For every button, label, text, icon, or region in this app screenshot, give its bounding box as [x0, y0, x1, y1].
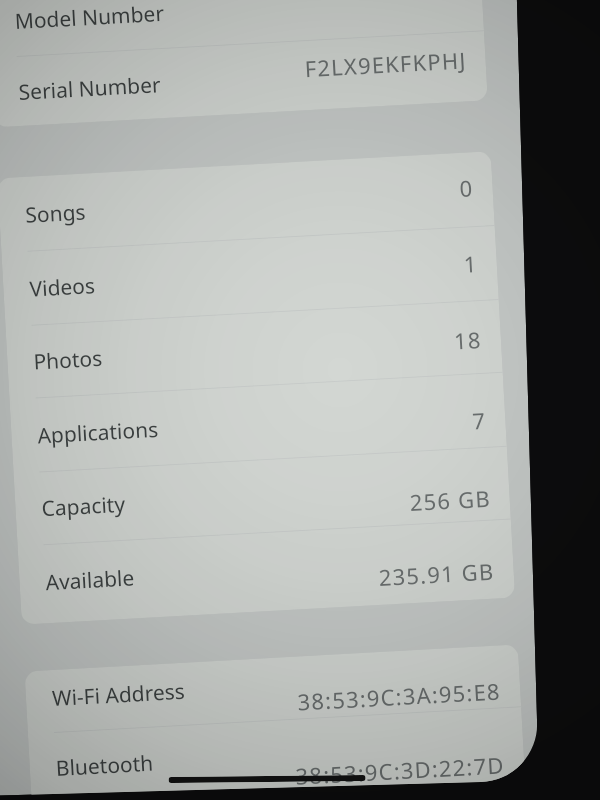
staticText: Applications [37, 415, 159, 450]
staticText: Photos [33, 344, 103, 377]
button[interactable]: Videos [1, 226, 499, 327]
staticText: 0 [459, 172, 474, 203]
button[interactable]: Serial Number [0, 31, 488, 129]
staticText: 235.91 GB [378, 556, 495, 592]
button[interactable]: Bluetooth [28, 707, 525, 795]
staticText: 38:53:9C:3A:95:E8 [297, 675, 502, 717]
staticText: Songs [25, 197, 87, 230]
button[interactable]: Songs [0, 152, 495, 253]
staticText: Videos [29, 271, 96, 304]
button[interactable]: Applications [9, 373, 507, 474]
staticText: Capacity [41, 490, 126, 523]
staticText: Available [45, 563, 135, 597]
staticText: 256 GB [409, 483, 491, 517]
staticText: Bluetooth [55, 749, 155, 783]
button[interactable]: Wi-Fi Address [24, 637, 521, 734]
button[interactable]: Model Number [0, 0, 484, 58]
staticText: Model Number [14, 0, 165, 36]
button[interactable]: Available [17, 519, 515, 621]
staticText: 18 [453, 324, 483, 355]
staticText: Wi-Fi Address [51, 677, 186, 713]
button[interactable]: Capacity [13, 446, 511, 547]
button[interactable]: Photos [5, 299, 503, 400]
staticText: Serial Number [18, 70, 162, 107]
staticText: 38:53:9C:3D:22:7D [295, 749, 506, 787]
staticText: 1 [463, 248, 478, 279]
staticText: 7 [471, 405, 487, 436]
staticText: F2LX9EKFKPHJ [304, 44, 467, 83]
